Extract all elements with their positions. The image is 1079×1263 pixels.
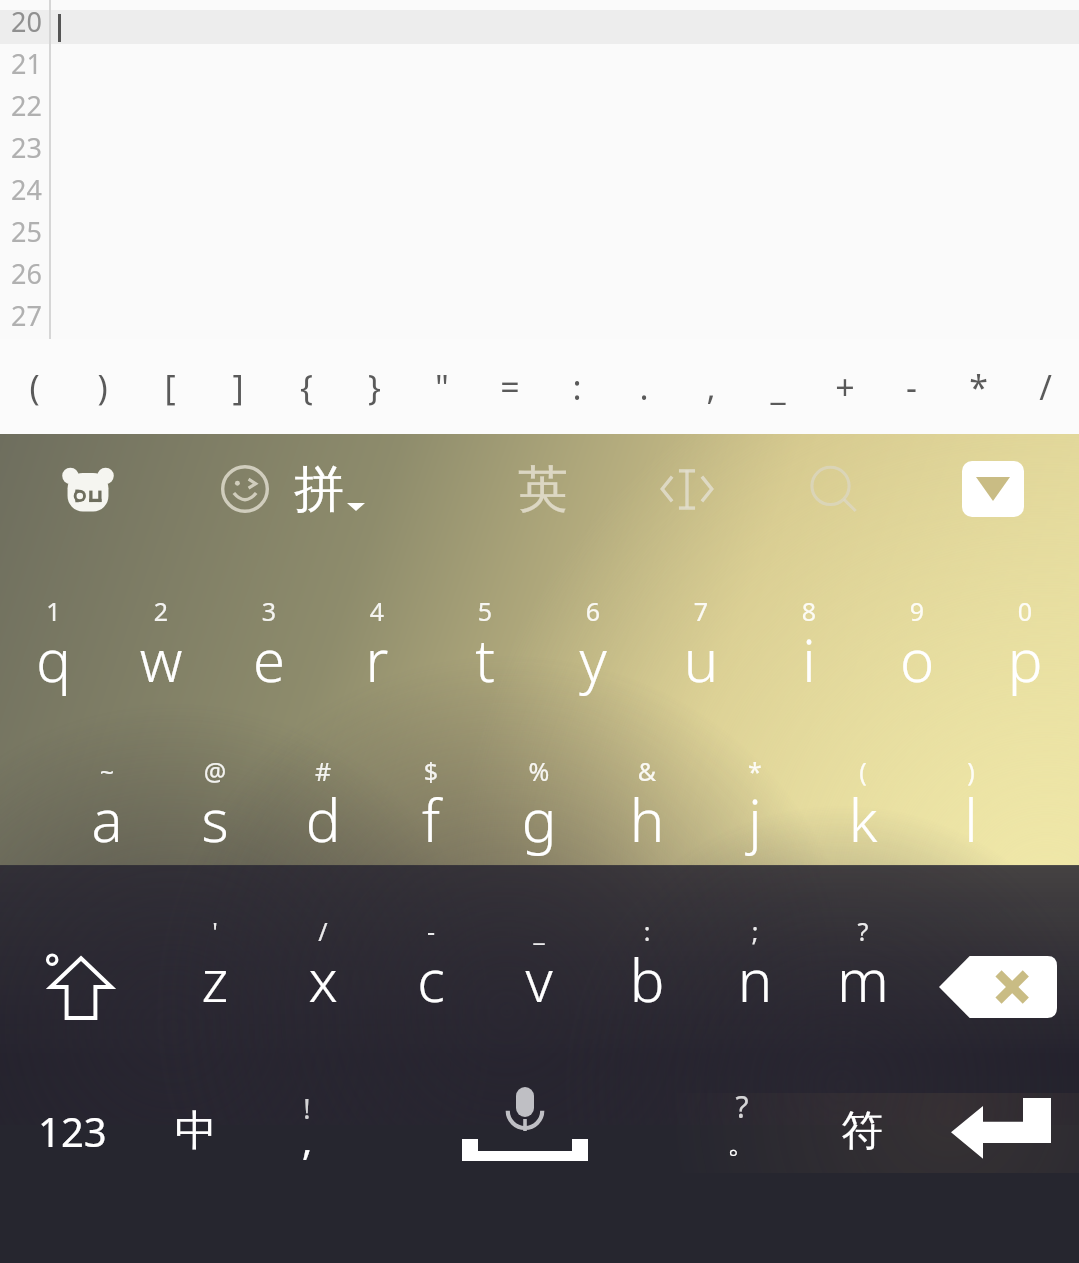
button[interactable]: 4: [323, 572, 431, 732]
button[interactable]: Space: [367, 1062, 682, 1200]
staticText: 8: [755, 594, 863, 628]
button[interactable]: -: [377, 892, 485, 1062]
button[interactable]: 8: [755, 572, 863, 732]
button[interactable]: 中: [145, 1062, 247, 1200]
button[interactable]: ,: [677, 339, 744, 434]
button[interactable]: 9: [863, 572, 971, 732]
button[interactable]: /: [1012, 339, 1079, 434]
button[interactable]: 1: [0, 572, 107, 732]
staticText: o: [863, 620, 971, 699]
button[interactable]: Enter: [922, 1062, 1079, 1200]
staticText: 26: [11, 255, 42, 292]
button[interactable]: 3: [215, 572, 323, 732]
button[interactable]: 拼: [254, 434, 405, 544]
button[interactable]: $: [377, 732, 485, 892]
staticText: !: [247, 1090, 367, 1127]
button[interactable]: 0: [971, 572, 1079, 732]
button[interactable]: Move cursor: [622, 434, 751, 544]
button[interactable]: *: [701, 732, 809, 892]
button[interactable]: 英: [478, 434, 607, 544]
button[interactable]: }: [340, 339, 408, 434]
staticText: 9: [863, 594, 971, 628]
button[interactable]: (: [0, 339, 68, 434]
staticText: 7: [647, 594, 755, 628]
staticText: }: [368, 364, 381, 410]
staticText: 24: [11, 171, 42, 208]
button[interactable]: =: [476, 339, 543, 434]
button[interactable]: 123: [0, 1062, 145, 1200]
staticText: r: [323, 620, 431, 699]
button[interactable]: @: [161, 732, 269, 892]
button[interactable]: ': [161, 892, 269, 1062]
button[interactable]: _: [485, 892, 593, 1062]
button[interactable]: !: [247, 1062, 367, 1200]
staticText: p: [971, 620, 1079, 699]
button[interactable]: ?: [682, 1062, 802, 1200]
staticText: 0: [971, 594, 1079, 628]
staticText: g: [485, 780, 593, 859]
button[interactable]: ;: [701, 892, 809, 1062]
staticText: -: [377, 914, 485, 948]
button[interactable]: ): [917, 732, 1025, 892]
staticText: ]: [232, 364, 244, 410]
button[interactable]: Baidu input settings: [23, 434, 152, 544]
button[interactable]: :: [593, 892, 701, 1062]
button[interactable]: _: [744, 339, 811, 434]
button[interactable]: Hide keyboard: [928, 434, 1057, 544]
staticText: y: [539, 620, 647, 699]
staticText: n: [701, 940, 809, 1019]
staticText: c: [377, 940, 485, 1019]
staticText: s: [161, 780, 269, 859]
staticText: $: [377, 754, 485, 788]
staticText: =: [500, 364, 520, 410]
staticText: 22: [11, 87, 42, 124]
button[interactable]: ?: [809, 892, 917, 1062]
staticText: &: [593, 754, 701, 788]
button[interactable]: [: [136, 339, 204, 434]
staticText: [: [164, 364, 176, 410]
staticText: *: [969, 364, 988, 410]
button[interactable]: (: [809, 732, 917, 892]
button[interactable]: 5: [431, 572, 539, 732]
staticText: d: [269, 780, 377, 859]
staticText: 20: [11, 3, 42, 40]
staticText: *: [701, 754, 809, 788]
button[interactable]: -: [878, 339, 945, 434]
button[interactable]: 符: [802, 1062, 922, 1200]
button[interactable]: ~: [53, 732, 161, 892]
button[interactable]: Emoji: [180, 434, 309, 544]
button[interactable]: ": [408, 339, 476, 434]
staticText: q: [0, 620, 107, 699]
button[interactable]: Search: [768, 434, 897, 544]
button[interactable]: {: [272, 339, 340, 434]
button[interactable]: *: [945, 339, 1012, 434]
staticText: 中: [175, 1105, 217, 1158]
button[interactable]: Backspace: [917, 892, 1079, 1062]
staticText: ?: [682, 1086, 802, 1127]
staticText: -: [906, 364, 917, 410]
button[interactable]: 2: [107, 572, 215, 732]
button[interactable]: %: [485, 732, 593, 892]
button[interactable]: #: [269, 732, 377, 892]
button[interactable]: ): [68, 339, 136, 434]
button[interactable]: Shift: [0, 892, 161, 1062]
staticText: a: [53, 780, 161, 859]
button[interactable]: +: [811, 339, 878, 434]
staticText: /: [1039, 364, 1052, 410]
staticText: 123: [38, 1104, 107, 1158]
staticText: ,: [247, 1112, 367, 1166]
staticText: 23: [11, 129, 42, 166]
button[interactable]: .: [610, 339, 677, 434]
staticText: z: [161, 940, 269, 1019]
staticText: #: [269, 754, 377, 788]
staticText: /: [269, 914, 377, 948]
staticText: m: [809, 940, 917, 1019]
staticText: ;: [701, 914, 809, 948]
button[interactable]: &: [593, 732, 701, 892]
button[interactable]: /: [269, 892, 377, 1062]
button[interactable]: 6: [539, 572, 647, 732]
button[interactable]: ]: [204, 339, 272, 434]
button[interactable]: 7: [647, 572, 755, 732]
button[interactable]: :: [543, 339, 610, 434]
